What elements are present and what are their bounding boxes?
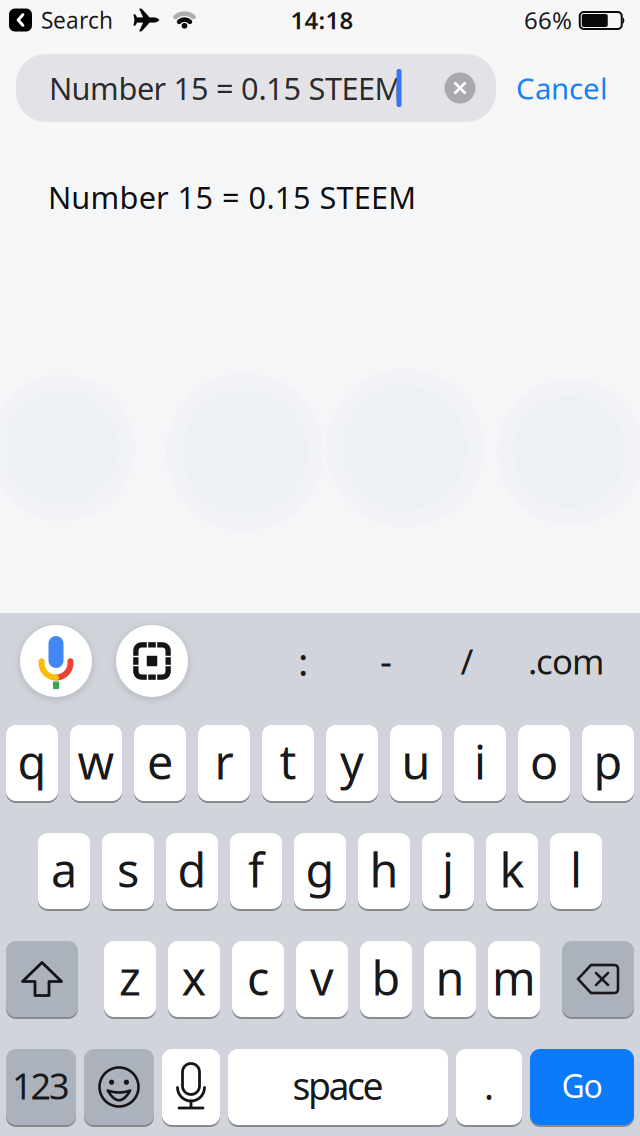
button[interactable]: m: [488, 941, 540, 1017]
button[interactable]: r: [198, 725, 250, 801]
staticText: space: [292, 1061, 383, 1110]
button[interactable]: e: [134, 725, 186, 801]
button[interactable]: .com: [504, 625, 628, 697]
staticText: m: [492, 946, 536, 1008]
button[interactable]: p: [582, 725, 634, 801]
button[interactable]: /: [437, 625, 497, 697]
staticText: Go: [561, 1064, 602, 1107]
staticText: y: [340, 730, 364, 792]
staticText: 14:18: [290, 4, 353, 36]
button[interactable]: q: [6, 725, 58, 801]
button[interactable]: c: [232, 941, 284, 1017]
staticText: f: [248, 838, 264, 900]
staticText: 123: [12, 1062, 70, 1109]
button[interactable]: w: [70, 725, 122, 801]
staticText: Number 15 = 0.15 STEEM: [48, 177, 416, 217]
button[interactable]: o: [518, 725, 570, 801]
staticText: t: [279, 730, 296, 792]
button[interactable]: y: [326, 725, 378, 801]
staticText: e: [147, 730, 173, 792]
button[interactable]: Go: [530, 1049, 634, 1125]
staticText: Cancel: [516, 68, 608, 107]
staticText: Search: [41, 5, 113, 35]
staticText: Number 15 = 0.15 STEEM: [49, 68, 402, 108]
button[interactable]: d: [166, 833, 218, 909]
button[interactable]: Emoji: [84, 1049, 154, 1125]
button[interactable]: i: [454, 725, 506, 801]
staticText: v: [310, 946, 334, 1008]
button[interactable]: h: [358, 833, 410, 909]
button[interactable]: a: [38, 833, 90, 909]
staticText: d: [177, 838, 206, 900]
button[interactable]: Dictate: [162, 1049, 220, 1125]
button[interactable]: Voice Search: [20, 625, 92, 697]
staticText: .com: [528, 638, 604, 684]
button[interactable]: t: [262, 725, 314, 801]
button[interactable]: 123: [6, 1049, 76, 1125]
staticText: q: [17, 730, 46, 792]
button[interactable]: Number 15 = 0.15 STEEM: [48, 175, 608, 219]
staticText: x: [181, 946, 206, 1008]
button[interactable]: Delete: [562, 941, 634, 1017]
button[interactable]: k: [486, 833, 538, 909]
button[interactable]: n: [424, 941, 476, 1017]
staticText: c: [247, 946, 269, 1008]
staticText: z: [119, 946, 141, 1008]
staticText: k: [499, 838, 524, 900]
staticText: .: [484, 1061, 494, 1110]
button[interactable]: Clear text: [444, 72, 475, 103]
staticText: a: [51, 838, 77, 900]
staticText: n: [435, 946, 464, 1008]
staticText: g: [305, 838, 334, 900]
staticText: h: [369, 838, 398, 900]
staticText: o: [530, 730, 558, 792]
staticText: l: [570, 838, 582, 900]
staticText: u: [401, 730, 430, 792]
button[interactable]: g: [294, 833, 346, 909]
staticText: r: [214, 730, 233, 792]
staticText: i: [474, 730, 486, 792]
button[interactable]: v: [296, 941, 348, 1017]
button[interactable]: -: [356, 625, 416, 697]
button[interactable]: Back to Search: [9, 0, 159, 40]
staticText: p: [593, 730, 622, 792]
button[interactable]: b: [360, 941, 412, 1017]
button[interactable]: Shift: [6, 941, 78, 1017]
button[interactable]: l: [550, 833, 602, 909]
staticText: s: [117, 838, 139, 900]
button[interactable]: .: [456, 1049, 522, 1125]
staticText: b: [371, 946, 400, 1008]
button[interactable]: Scan QR code: [116, 625, 188, 697]
button[interactable]: j: [422, 833, 474, 909]
button[interactable]: Cancel: [516, 68, 608, 107]
staticText: w: [77, 730, 114, 792]
button[interactable]: z: [104, 941, 156, 1017]
staticText: :: [298, 635, 308, 687]
button[interactable]: x: [168, 941, 220, 1017]
button[interactable]: f: [230, 833, 282, 909]
staticText: -: [380, 636, 392, 686]
button[interactable]: :: [273, 625, 333, 697]
button[interactable]: u: [390, 725, 442, 801]
staticText: 66%: [524, 4, 572, 36]
staticText: j: [442, 838, 454, 900]
button[interactable]: s: [102, 833, 154, 909]
button[interactable]: space: [228, 1049, 448, 1125]
staticText: /: [460, 638, 473, 684]
